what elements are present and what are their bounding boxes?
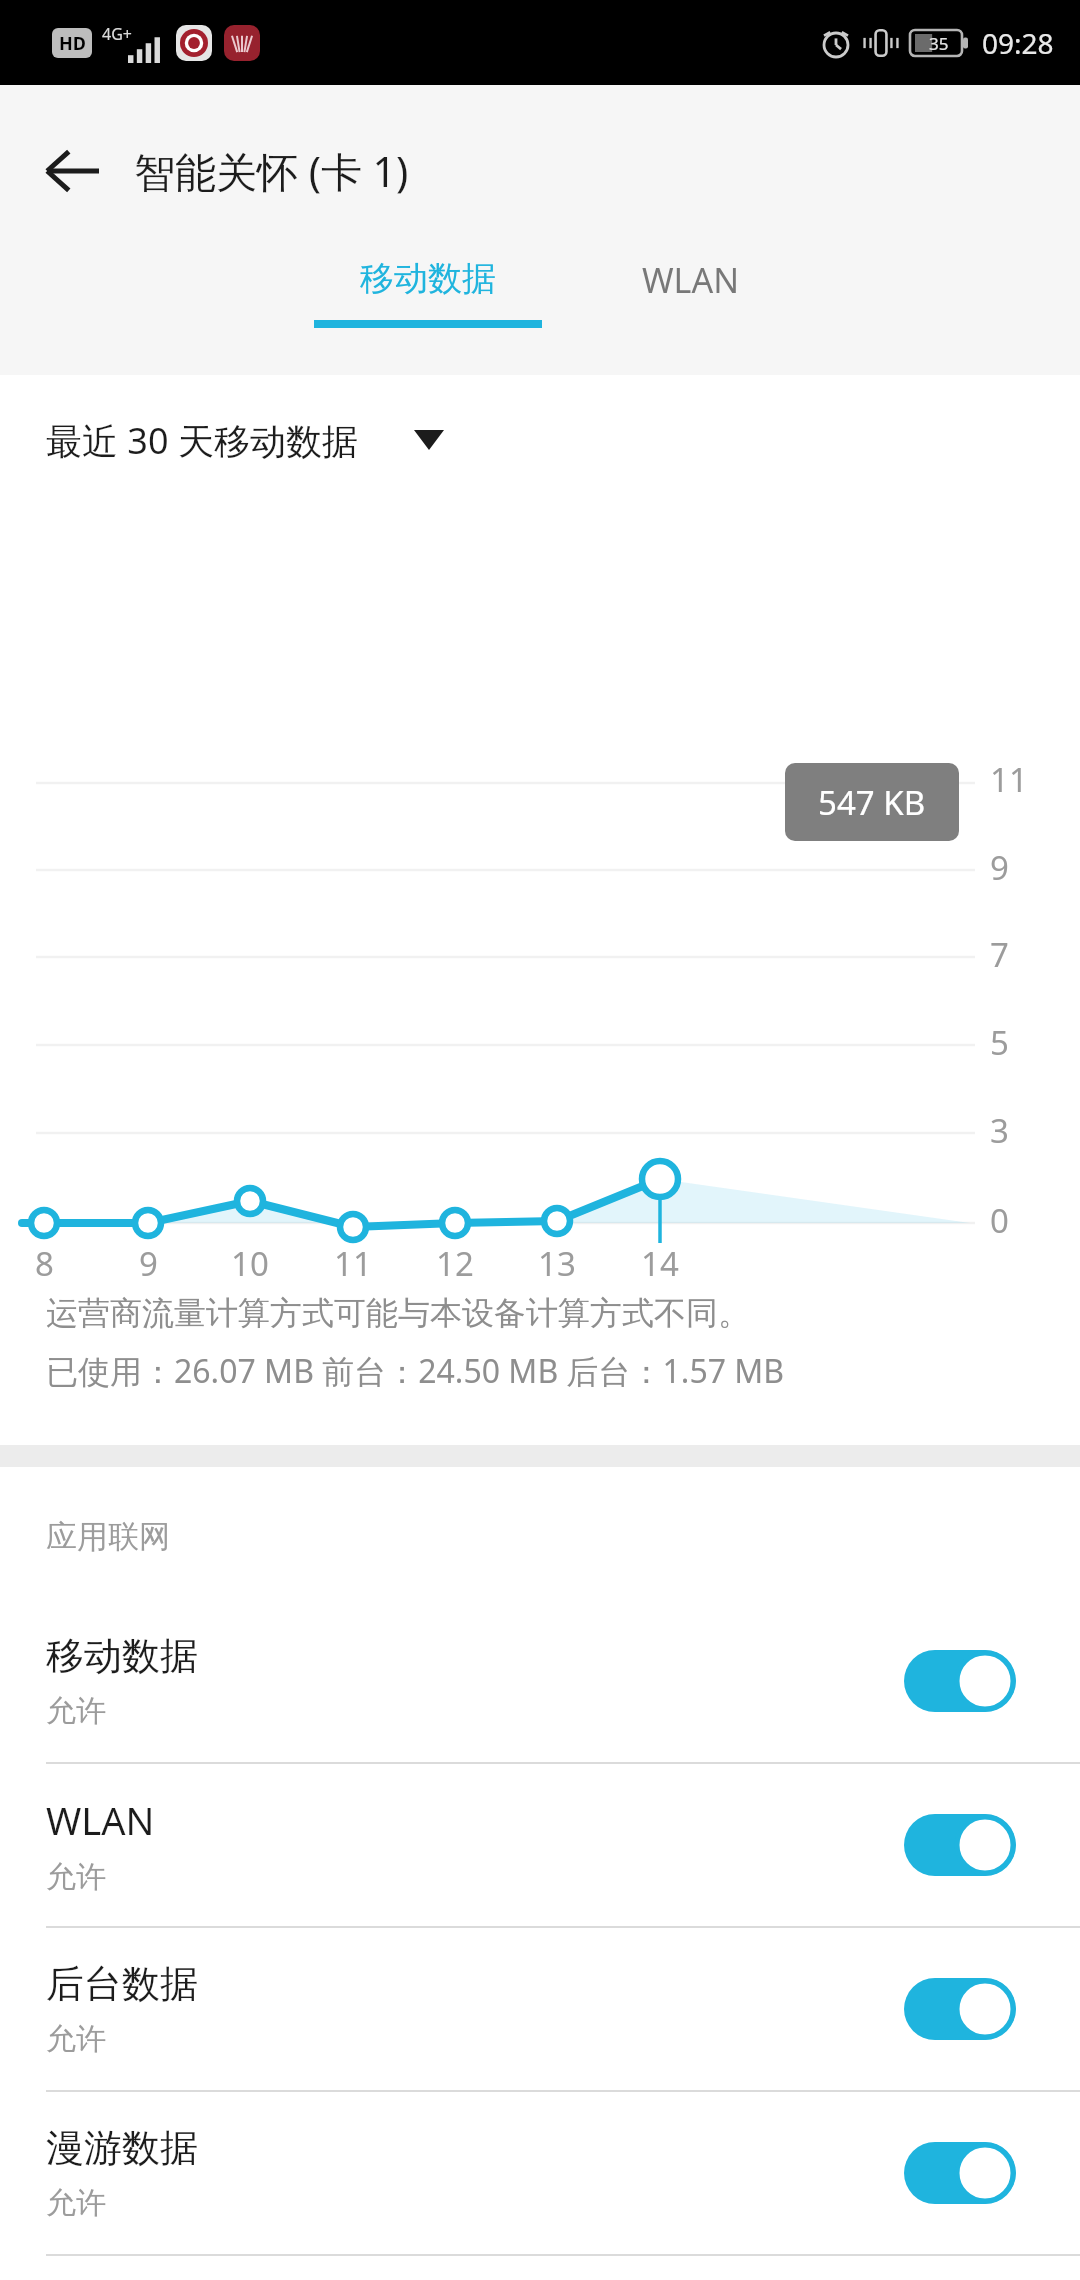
staticText: 已使用：26.07 MB 前台：24.50 MB 后台：1.57 MB [46,1349,785,1393]
button[interactable]: 移动数据 [0,1600,1080,1762]
staticText: 运营商流量计算方式可能与本设备计算方式不同。 [46,1293,750,1333]
staticText: 11 [990,757,1028,802]
staticText: 移动数据 [360,257,496,300]
staticText: 14 [641,1241,679,1277]
staticText: WLAN [642,257,740,303]
staticText: 允许 [46,2020,106,2058]
button[interactable]: 后台数据 [0,1928,1080,2090]
button[interactable]: WLAN [0,1764,1080,1926]
staticText: 12 [436,1241,474,1277]
staticText: 漫游数据 [46,2124,198,2172]
staticText: 最近 30 天移动数据 [46,416,358,465]
staticText: 5 [990,1020,1009,1065]
staticText: 09:28 [982,24,1054,62]
button[interactable]: 移动数据 [298,257,558,328]
button[interactable]: 漫游数据 [0,2092,1080,2254]
staticText: 3 [990,1108,1009,1153]
staticText: 8 [35,1241,54,1277]
staticText: 4G+ [102,23,132,45]
button[interactable]: 最近 30 天移动数据 [0,375,1080,505]
staticText: HD [59,31,86,56]
button[interactable]: Back [24,123,120,219]
staticText: 35 [929,32,949,55]
staticText: 允许 [46,1858,106,1896]
staticText: 13 [538,1241,576,1277]
staticText: WLAN [46,1794,155,1846]
staticText: 应用联网 [46,1517,170,1556]
staticText: 547 KB [818,780,926,825]
staticText: 允许 [46,1692,106,1730]
staticText: 7 [990,932,1009,977]
staticText: 允许 [46,2184,106,2222]
staticText: 移动数据 [46,1632,198,1680]
button[interactable]: WLAN [600,257,782,331]
staticText: 后台数据 [46,1960,198,2008]
staticText: 智能关怀 (卡 1) [134,143,409,199]
staticText: 9 [990,845,1009,890]
staticText: 11 [334,1241,372,1277]
staticText: 10 [231,1241,269,1277]
staticText: 0 [990,1198,1009,1243]
staticText: 9 [139,1241,158,1277]
